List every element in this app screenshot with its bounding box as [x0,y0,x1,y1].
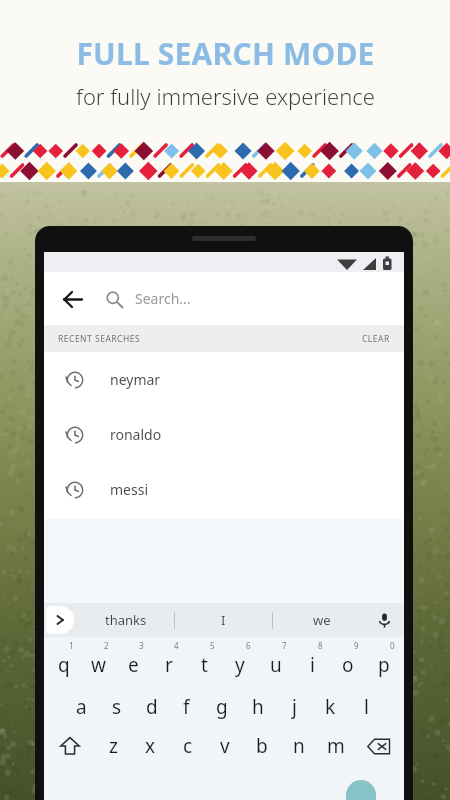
button[interactable]: 8 [294,640,330,682]
button[interactable]: thanks [78,603,174,637]
staticText: n [293,733,305,759]
button[interactable]: ronaldo [44,407,404,462]
staticText: c [183,733,193,759]
staticText: RECENT SEARCHES [58,333,141,345]
staticText: q [58,652,70,678]
button[interactable]: g [204,682,240,724]
staticText: g [216,694,228,720]
button[interactable]: messi [44,462,404,517]
button[interactable]: n [280,724,317,768]
button[interactable]: v [206,724,243,768]
staticText: s [112,694,122,720]
button[interactable]: l [348,682,384,724]
staticText: e [128,652,139,678]
staticText: j [292,694,297,720]
staticText: CLEAR [362,333,390,345]
button[interactable]: j [276,682,312,724]
button[interactable]: f [169,682,204,724]
button[interactable]: b [243,724,280,768]
button[interactable]: I [175,603,272,637]
button[interactable]: Shift [44,724,95,768]
button[interactable]: 4 [151,640,186,682]
button[interactable]: k [312,682,348,724]
button[interactable]: 7 [258,640,294,682]
staticText: l [364,694,369,720]
staticText: r [165,652,173,678]
button[interactable]: h [240,682,276,724]
button[interactable]: c [169,724,206,768]
staticText: 0 [390,640,395,651]
staticText: FULL SEARCH MODE [76,33,375,74]
button[interactable]: More suggestions [46,606,74,634]
button[interactable]: x [132,724,169,768]
staticText: v [220,733,230,759]
staticText: a [76,694,87,720]
staticText: x [145,733,156,759]
staticText: b [256,733,268,759]
button[interactable]: we [273,603,370,637]
staticText: Search... [135,289,191,308]
staticText: t [201,652,208,678]
button[interactable]: Back [53,280,91,318]
button[interactable]: d [134,682,169,724]
staticText: w [91,652,106,678]
staticText: 5 [210,640,215,651]
button[interactable]: CLEAR [348,325,404,352]
button[interactable]: 2 [81,640,116,682]
button[interactable]: 6 [222,640,258,682]
staticText: thanks [105,611,147,629]
button[interactable] [346,780,376,800]
staticText: 6 [246,640,251,651]
staticText: k [325,694,336,720]
button[interactable]: Voice input [372,608,396,632]
staticText: z [109,733,118,759]
button[interactable]: neymar [44,352,404,407]
staticText: for fully immersive experience [76,81,375,111]
staticText: i [310,652,315,678]
button[interactable]: Backspace [354,724,404,768]
staticText: p [378,652,390,678]
staticText: 2 [104,640,109,651]
button[interactable]: s [99,682,134,724]
button[interactable]: 1 [46,640,81,682]
button[interactable]: m [317,724,354,768]
staticText: 4 [174,640,179,651]
button[interactable]: a [64,682,99,724]
staticText: d [146,694,158,720]
staticText: 3 [139,640,144,651]
staticText: 7 [282,640,287,651]
staticText: f [183,694,190,720]
button[interactable]: 0 [366,640,402,682]
staticText: y [235,652,245,678]
staticText: u [270,652,282,678]
staticText: we [313,611,331,629]
button[interactable]: z [95,724,132,768]
button[interactable]: 3 [116,640,151,682]
staticText: messi [110,480,149,499]
button[interactable]: 5 [186,640,222,682]
button[interactable]: 9 [330,640,366,682]
staticText: o [342,652,354,678]
staticText: ronaldo [110,425,162,444]
staticText: I [221,611,226,629]
staticText: neymar [110,370,161,389]
staticText: h [252,694,264,720]
staticText: m [327,733,345,759]
staticText: 9 [354,640,359,651]
staticText: 8 [318,640,323,651]
staticText: 1 [69,640,74,651]
